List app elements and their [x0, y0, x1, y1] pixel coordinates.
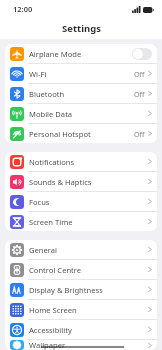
staticText: 12:00	[13, 4, 33, 14]
button[interactable]: General	[5, 240, 157, 260]
button[interactable]: Notifications	[5, 152, 157, 172]
staticText: Off	[134, 69, 145, 79]
staticText: Personal Hotspot	[29, 129, 91, 139]
staticText: Wallpaper	[29, 340, 66, 350]
button[interactable]: Focus	[5, 192, 157, 212]
staticText: Display & Brightness	[29, 285, 103, 295]
button[interactable]: Airplane Mode toggle	[132, 48, 152, 60]
button[interactable]: Display & Brightness	[5, 280, 157, 300]
button[interactable]: Wi-Fi	[5, 64, 157, 84]
button[interactable]: Wallpaper	[5, 340, 157, 350]
button[interactable]: Sounds & Haptics	[5, 172, 157, 192]
button[interactable]: Bluetooth	[5, 84, 157, 104]
button[interactable]: Personal Hotspot	[5, 124, 157, 143]
staticText: Mobile Data	[29, 109, 73, 119]
button[interactable]: Accessibility	[5, 320, 157, 340]
button[interactable]: Mobile Data	[5, 104, 157, 124]
staticText: Accessibility	[29, 325, 72, 335]
button[interactable]: Screen Time	[5, 212, 157, 231]
staticText: Airplane Mode	[29, 49, 82, 59]
staticText: Sounds & Haptics	[29, 177, 92, 187]
button[interactable]: Control Centre	[5, 260, 157, 280]
staticText: Screen Time	[29, 217, 73, 227]
staticText: Notifications	[29, 157, 75, 167]
staticText: Off	[134, 89, 145, 99]
staticText: Wi-Fi	[29, 69, 47, 79]
staticText: Bluetooth	[29, 89, 65, 99]
staticText: Settings	[62, 22, 101, 35]
staticText: Off	[134, 129, 145, 139]
button[interactable]: Airplane Mode	[5, 44, 157, 64]
staticText: General	[29, 245, 57, 255]
button[interactable]: Home Screen	[5, 300, 157, 320]
staticText: Home Screen	[29, 305, 77, 315]
staticText: Focus	[29, 197, 50, 207]
staticText: Control Centre	[29, 265, 82, 275]
